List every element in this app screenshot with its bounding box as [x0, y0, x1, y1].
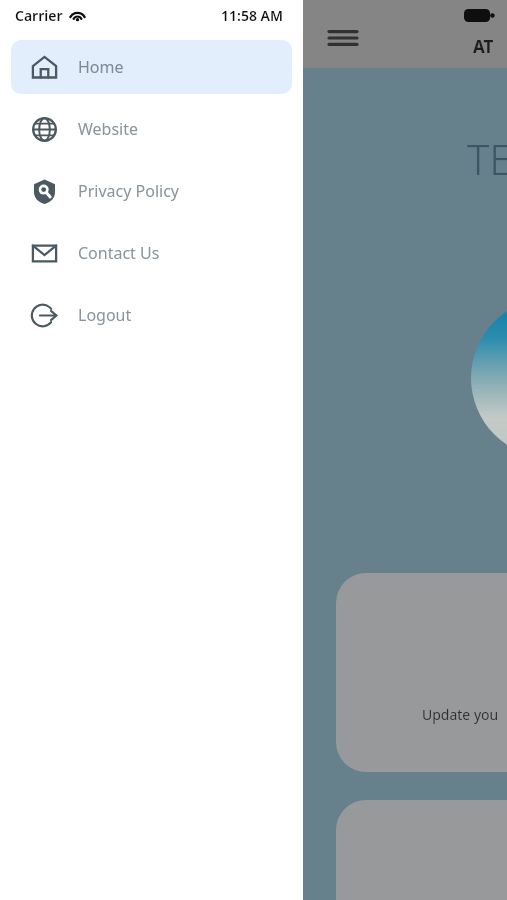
button[interactable]: Logout — [11, 288, 292, 342]
staticText: Carrier — [15, 6, 63, 25]
button[interactable]: Privacy Policy — [11, 164, 292, 218]
staticText: 11:58 AM — [221, 6, 283, 25]
button[interactable]: Website — [11, 102, 292, 156]
staticText: AT — [473, 35, 494, 58]
staticText: Contact Us — [78, 242, 160, 264]
button[interactable]: Open navigation menu — [323, 18, 363, 58]
staticText: Logout — [78, 304, 132, 326]
staticText: TE — [467, 130, 507, 187]
staticText: Update you — [422, 705, 499, 724]
button[interactable] — [336, 800, 507, 900]
button[interactable]: Update you — [336, 573, 507, 772]
button[interactable]: Contact Us — [11, 226, 292, 280]
staticText: Privacy Policy — [78, 180, 179, 202]
staticText: Home — [78, 56, 124, 78]
button[interactable]: Home — [11, 40, 292, 94]
staticText: Website — [78, 118, 139, 140]
